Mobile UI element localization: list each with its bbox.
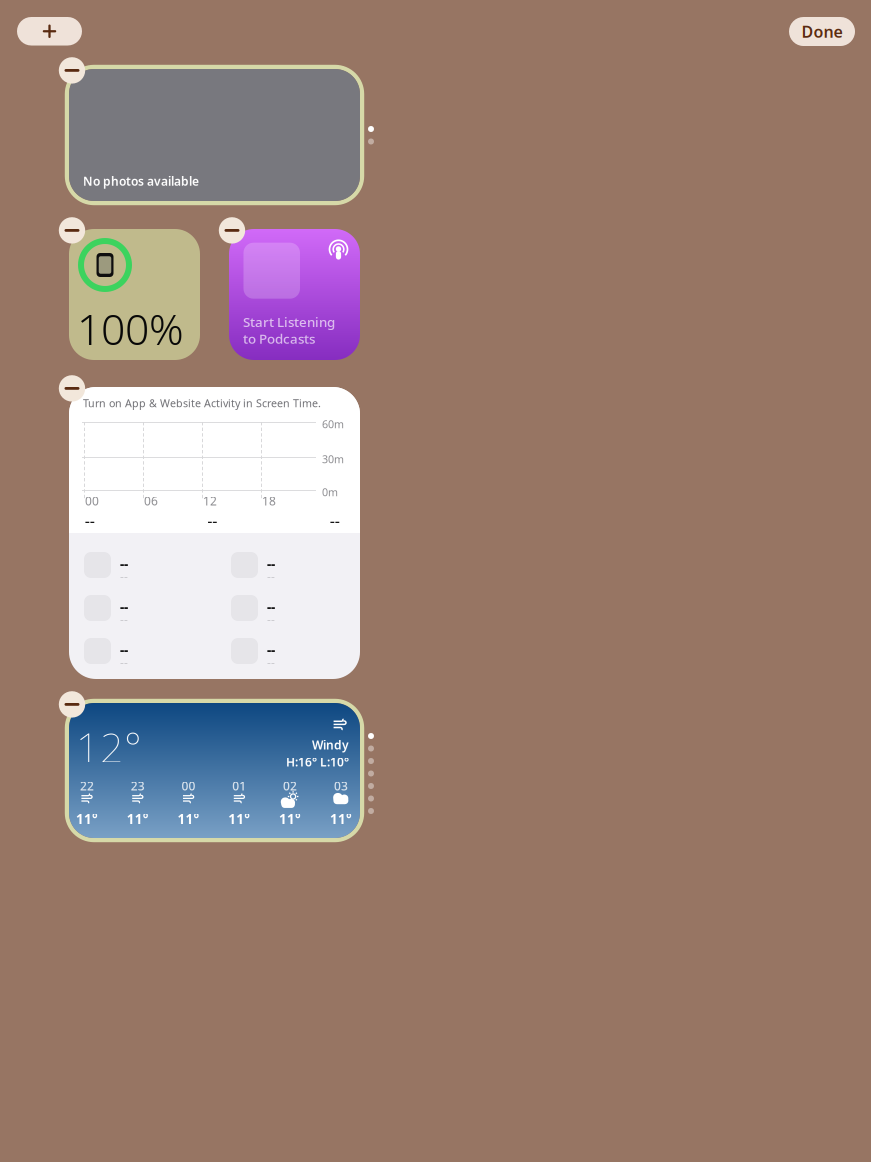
- button[interactable]: Turn on App & Website Activity in Screen…: [69, 387, 360, 679]
- staticText: 0m: [322, 485, 338, 499]
- staticText: --: [120, 555, 128, 573]
- staticText: --: [267, 555, 275, 573]
- staticText: 22: [80, 778, 94, 794]
- staticText: 01: [232, 778, 246, 794]
- staticText: --: [267, 641, 275, 659]
- staticText: 11°: [177, 810, 199, 828]
- button[interactable]: Remove widget: [59, 217, 85, 244]
- staticText: --: [267, 611, 275, 627]
- button[interactable]: 12°: [69, 703, 360, 838]
- button[interactable]: Start Listening: [229, 229, 360, 360]
- staticText: H:16° L:10°: [286, 754, 349, 770]
- staticText: --: [330, 511, 340, 530]
- staticText: 11°: [127, 810, 149, 828]
- staticText: 18: [262, 493, 276, 509]
- button[interactable]: Remove widget: [59, 691, 85, 718]
- button[interactable]: No photos available: [69, 69, 360, 201]
- staticText: No photos available: [83, 173, 199, 189]
- staticText: --: [120, 568, 128, 584]
- staticText: 12: [203, 493, 217, 509]
- button[interactable]: Remove widget: [219, 217, 245, 244]
- staticText: Start Listening: [243, 313, 335, 331]
- staticText: 11°: [228, 810, 250, 828]
- staticText: --: [120, 598, 128, 616]
- staticText: --: [267, 654, 275, 670]
- button[interactable]: Remove widget: [59, 57, 85, 84]
- staticText: 00: [85, 493, 99, 509]
- staticText: to Podcasts: [243, 330, 315, 347]
- button[interactable]: Remove widget: [59, 375, 85, 402]
- staticText: --: [85, 511, 95, 530]
- staticText: Done: [801, 21, 842, 42]
- button[interactable]: Done: [789, 17, 855, 46]
- staticText: Windy: [312, 737, 349, 753]
- staticText: --: [120, 654, 128, 670]
- staticText: 11°: [330, 810, 352, 828]
- staticText: 23: [131, 778, 145, 794]
- staticText: --: [267, 568, 275, 584]
- staticText: 06: [144, 493, 158, 509]
- staticText: 02: [283, 778, 297, 794]
- staticText: 11°: [279, 810, 301, 828]
- staticText: 60m: [322, 417, 344, 431]
- button[interactable]: Add widget: [17, 17, 82, 45]
- staticText: 30m: [322, 452, 344, 466]
- staticText: 100%: [77, 300, 184, 357]
- staticText: --: [120, 611, 128, 627]
- staticText: 00: [181, 778, 195, 794]
- staticText: 03: [334, 778, 348, 794]
- staticText: --: [267, 598, 275, 616]
- button[interactable]: 100%: [69, 229, 200, 360]
- staticText: 12°: [76, 719, 142, 774]
- staticText: 11°: [76, 810, 98, 828]
- staticText: --: [120, 641, 128, 659]
- staticText: Turn on App & Website Activity in Screen…: [83, 396, 321, 410]
- staticText: --: [207, 511, 217, 530]
